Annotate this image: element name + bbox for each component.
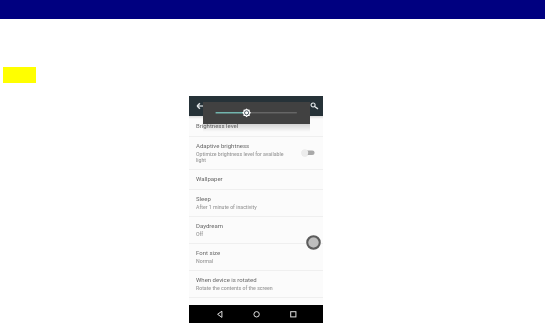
staticText: Brightness level (196, 122, 239, 129)
button[interactable]: Search (309, 101, 319, 111)
button[interactable]: Sleep (189, 189, 323, 216)
staticText: Daydream (196, 222, 224, 229)
staticText: Normal (196, 258, 214, 264)
button[interactable]: Font size (189, 243, 323, 270)
staticText: Optimize brightness level for available … (196, 151, 284, 163)
staticText: Sleep (196, 195, 211, 202)
staticText: Off (196, 231, 204, 237)
button[interactable]: Brightness level (189, 116, 323, 137)
staticText: After 1 minute of inactivity (196, 204, 257, 210)
staticText: Font size (196, 249, 221, 256)
button[interactable]: Adaptive brightness (189, 136, 323, 169)
button[interactable] (203, 102, 310, 124)
staticText: Rotate the contents of the screen (196, 285, 273, 291)
button[interactable]: Daydream (189, 216, 323, 243)
staticText: When device is rotated (196, 276, 257, 283)
button[interactable]: Wallpaper (189, 169, 323, 189)
staticText: Adaptive brightness (196, 142, 250, 149)
button[interactable]: Adaptive brightness toggle (301, 148, 315, 158)
staticText: Wallpaper (196, 175, 223, 182)
button[interactable]: Back (195, 101, 205, 111)
button[interactable]: When device is rotated (189, 270, 323, 297)
